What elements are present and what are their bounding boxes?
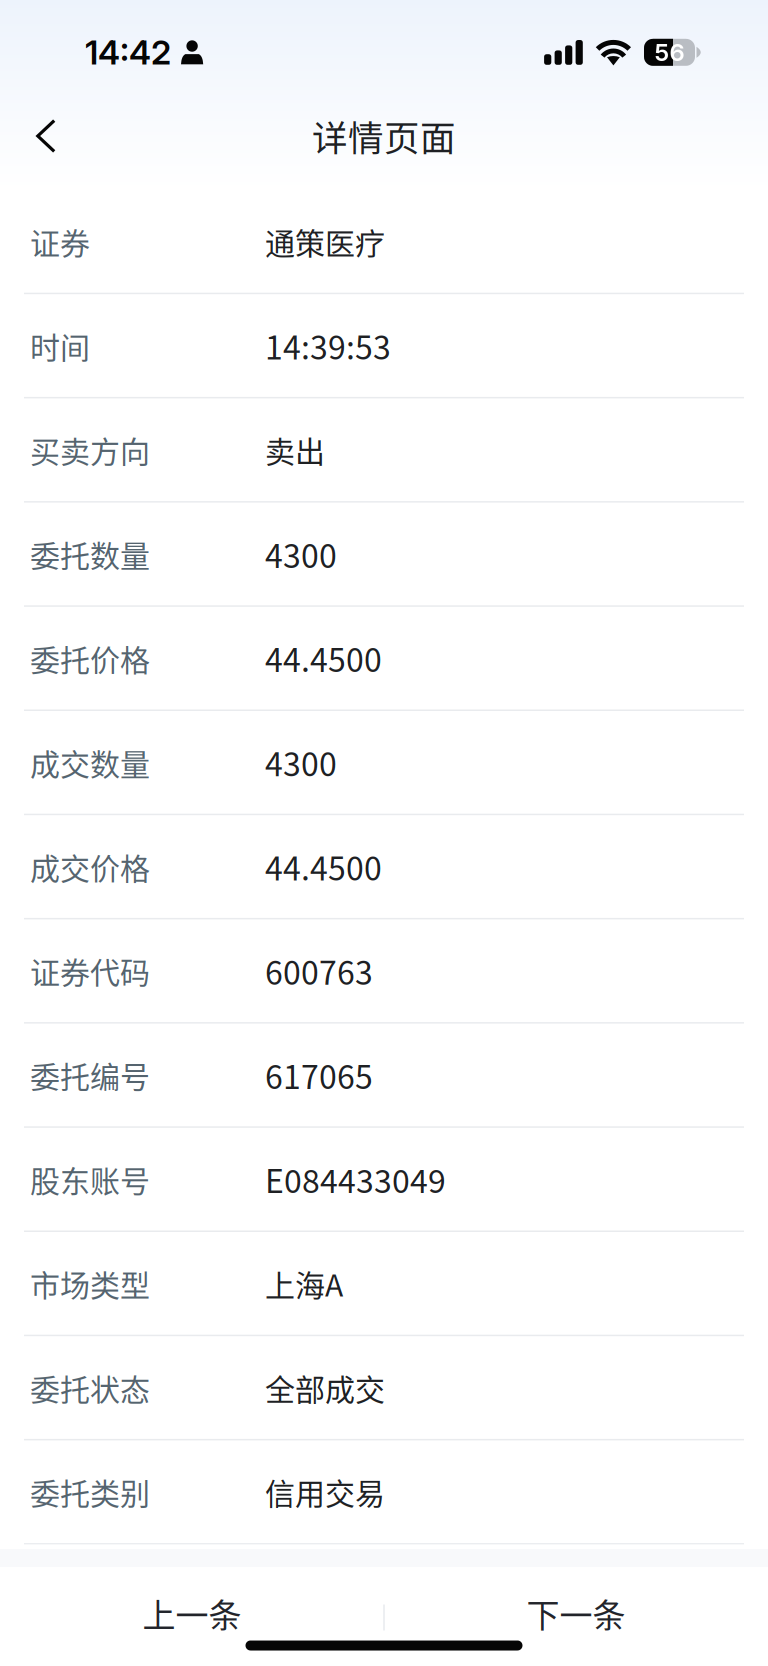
staticText: E084433049: [265, 1156, 446, 1202]
staticText: 委托类别: [30, 1470, 150, 1513]
staticText: 详情页面: [312, 110, 456, 161]
staticText: 上海A: [265, 1262, 343, 1305]
staticText: 委托价格: [30, 636, 150, 680]
staticText: 617065: [265, 1052, 373, 1098]
staticText: 44.4500: [265, 635, 382, 681]
staticText: 4300: [265, 531, 337, 577]
staticText: 下一条: [526, 1589, 625, 1637]
button[interactable]: 下一条: [384, 1571, 768, 1660]
staticText: 600763: [265, 948, 373, 994]
staticText: 卖出: [265, 428, 325, 471]
staticText: 委托编号: [30, 1053, 150, 1097]
button[interactable]: 返回: [13, 101, 79, 171]
staticText: 证券代码: [30, 949, 150, 992]
staticText: 44.4500: [265, 843, 382, 890]
staticText: 全部成交: [265, 1366, 385, 1409]
staticText: 14:42: [85, 32, 171, 73]
staticText: 委托状态: [30, 1366, 150, 1409]
staticText: 4300: [265, 739, 337, 785]
staticText: 成交价格: [30, 845, 150, 888]
staticText: 成交数量: [30, 741, 150, 784]
staticText: 买卖方向: [30, 428, 150, 471]
button[interactable]: 上一条: [0, 1571, 384, 1660]
staticText: 市场类型: [30, 1262, 150, 1305]
staticText: 通策医疗: [265, 220, 385, 263]
staticText: 时间: [30, 324, 90, 367]
staticText: 股东账号: [30, 1157, 150, 1201]
staticText: 56: [654, 38, 684, 67]
staticText: 证券: [30, 220, 90, 263]
staticText: 信用交易: [265, 1470, 385, 1513]
staticText: 委托数量: [30, 532, 150, 576]
staticText: 上一条: [142, 1589, 241, 1637]
staticText: 14:39:53: [265, 322, 391, 369]
